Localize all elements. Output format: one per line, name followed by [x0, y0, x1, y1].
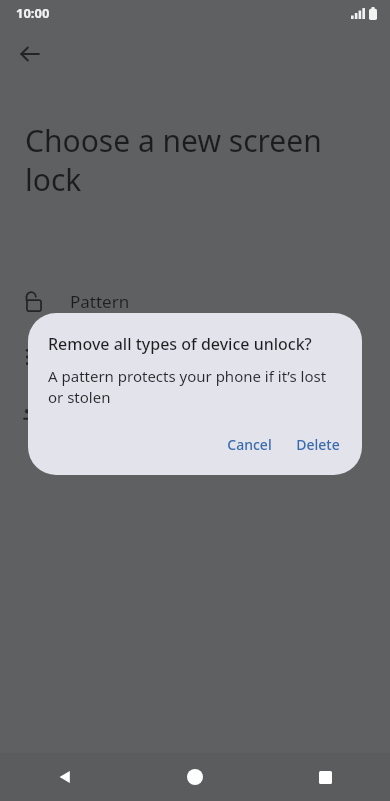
- button[interactable]: Recent apps: [260, 753, 390, 801]
- staticText: 10:00: [16, 4, 50, 22]
- staticText: Remove all types of device unlock?: [48, 333, 312, 355]
- button[interactable]: Cancel: [217, 428, 282, 461]
- staticText: Cancel: [227, 435, 272, 454]
- button[interactable]: PIN: [0, 329, 390, 385]
- staticText: Choose a new screen lock: [25, 120, 354, 199]
- staticText: Pattern: [70, 290, 130, 313]
- staticText: A pattern protects your phone if it’s lo…: [48, 366, 340, 408]
- staticText: Password: [70, 402, 147, 425]
- button[interactable]: Password: [0, 385, 390, 441]
- button[interactable]: Delete: [286, 428, 350, 461]
- staticText: Delete: [296, 435, 340, 454]
- button[interactable]: Pattern: [0, 273, 390, 329]
- staticText: PIN: [70, 346, 99, 369]
- button[interactable]: Back: [6, 30, 54, 78]
- button[interactable]: Back: [0, 753, 130, 801]
- button[interactable]: Home: [130, 753, 260, 801]
